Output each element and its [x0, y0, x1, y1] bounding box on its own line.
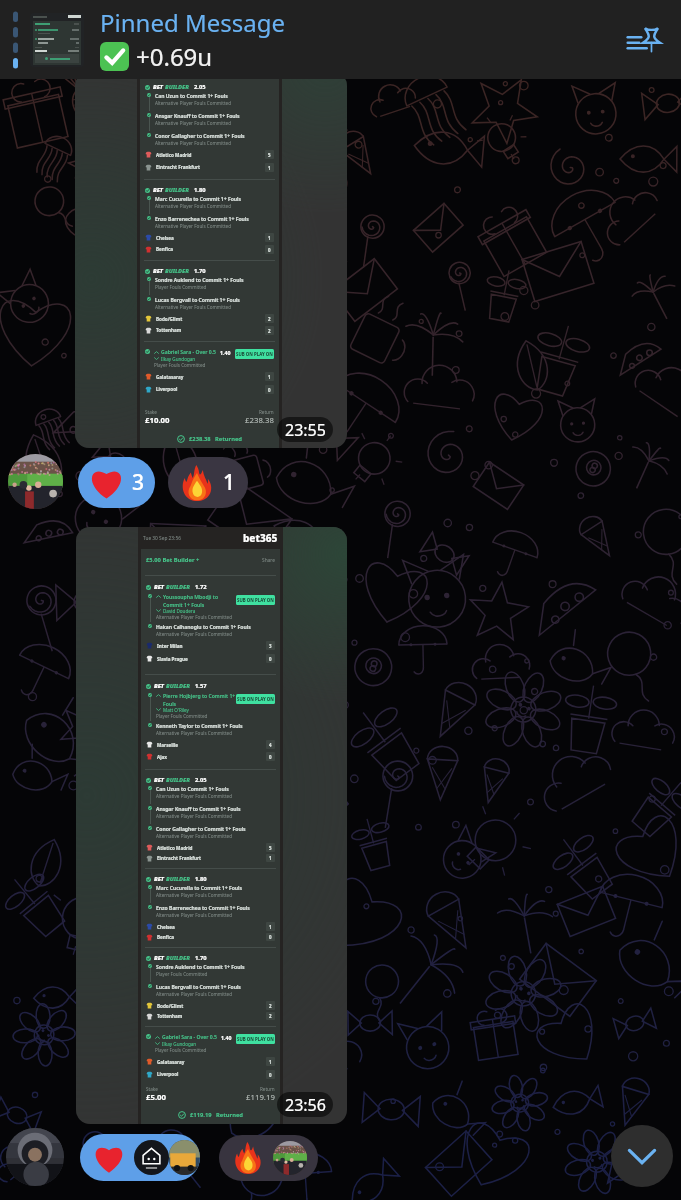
staticText: Returned: [215, 435, 243, 443]
staticText: Return: [260, 1086, 275, 1092]
staticText: £5.00 Bet Builder +: [146, 556, 200, 564]
button[interactable]: Fire reaction: [168, 457, 248, 508]
staticText: Ilkay Gundogan: [161, 356, 196, 362]
staticText: Atletico Madrid: [156, 152, 192, 158]
staticText: Alternative Player Fouls Committed: [155, 140, 231, 146]
staticText: BUILDER: [166, 776, 190, 784]
staticText: Enzo Barrenechea to Commit 1+ Fouls: [155, 216, 249, 223]
button[interactable]: Fire reaction: [219, 1135, 318, 1181]
button[interactable]: Heart reaction: [80, 1134, 200, 1181]
staticText: Bodo/Glimt: [156, 316, 183, 322]
staticText: Alternative Player Fouls Committed: [156, 730, 232, 736]
staticText: £238.38: [245, 415, 274, 426]
staticText: Stake: [145, 409, 157, 415]
staticText: 3: [269, 643, 272, 649]
staticText: Alternative Player Fouls Committed: [155, 100, 231, 106]
staticText: £119.19: [190, 1111, 212, 1119]
button[interactable]: Scroll to bottom: [611, 1125, 673, 1187]
staticText: Can Uzun to Commit 1+ Fouls: [156, 786, 229, 793]
staticText: Galatasaray: [157, 1059, 185, 1065]
staticText: Marc Cucurella to Commit 1+ Fouls: [155, 196, 242, 203]
staticText: 2.05: [194, 83, 206, 91]
staticText: Kenneth Taylor to Commit 1+ Fouls: [156, 723, 243, 730]
staticText: Sondre Auklend to Commit 1+ Fouls: [156, 964, 245, 971]
staticText: Conor Gallagher to Commit 1+ Fouls: [156, 826, 246, 833]
staticText: BET: [154, 682, 166, 690]
staticText: 0: [268, 247, 271, 253]
button[interactable]: BET: [75, 72, 347, 448]
staticText: £119.19: [246, 1092, 275, 1103]
staticText: BET: [154, 776, 166, 784]
staticText: Share: [262, 557, 275, 564]
staticText: 2: [268, 328, 271, 334]
staticText: Eintracht Frankfurt: [156, 164, 201, 170]
staticText: SUB ON PLAY ON: [236, 351, 273, 357]
staticText: Returned: [216, 1111, 244, 1119]
staticText: David Doudera: [163, 608, 196, 614]
staticText: 5: [268, 152, 271, 158]
staticText: BUILDER: [166, 682, 190, 690]
staticText: 1.80: [194, 186, 206, 194]
staticText: 1: [268, 235, 271, 241]
staticText: 2.05: [195, 776, 207, 784]
staticText: BET: [154, 875, 166, 883]
staticText: Alternative Player Fouls Committed: [156, 892, 232, 898]
staticText: Pinned Message: [100, 6, 285, 39]
staticText: Inter Milan: [157, 643, 183, 649]
staticText: Alternative Player Fouls Committed: [156, 793, 232, 799]
staticText: 3: [132, 468, 145, 497]
staticText: SUB ON PLAY ON: [237, 696, 274, 702]
staticText: 1: [223, 468, 236, 497]
staticText: Slavia Prague: [157, 656, 188, 662]
staticText: Chelsea: [157, 924, 175, 930]
staticText: 23:55: [285, 419, 326, 441]
staticText: Hakan Calhanoglu to Commit 1+ Fouls: [156, 624, 251, 631]
staticText: Bodo/Glimt: [157, 1003, 184, 1009]
staticText: BET: [153, 83, 165, 91]
staticText: £5.00: [146, 1092, 167, 1103]
staticText: 1.57: [195, 682, 207, 690]
staticText: 2: [269, 1003, 272, 1009]
staticText: 23:56: [285, 1094, 326, 1116]
staticText: 1: [268, 374, 271, 380]
staticText: BUILDER: [165, 83, 189, 91]
staticText: Sondre Auklend to Commit 1+ Fouls: [155, 277, 244, 284]
staticText: 1: [269, 924, 272, 930]
staticText: BET: [154, 583, 166, 591]
staticText: Alternative Player Fouls Committed: [155, 203, 231, 209]
staticText: 0: [269, 934, 272, 940]
staticText: Alternative Player Fouls Committed: [156, 614, 232, 620]
staticText: Stake: [146, 1086, 158, 1092]
staticText: Galatasaray: [156, 374, 184, 380]
button[interactable]: Pinned messages: [621, 17, 667, 63]
staticText: BUILDER: [166, 583, 190, 591]
staticText: Ilkay Gundogan: [162, 1041, 197, 1047]
staticText: 1: [269, 855, 272, 861]
staticText: Tottenham: [156, 327, 182, 333]
staticText: BET: [154, 954, 166, 962]
staticText: Alternative Player Fouls Committed: [155, 304, 231, 310]
staticText: 2: [268, 316, 271, 322]
button[interactable]: Tue 30 Sep 23:56: [76, 527, 347, 1124]
staticText: 0: [269, 1072, 272, 1078]
staticText: 1: [269, 1059, 272, 1065]
staticText: Benfica: [156, 246, 174, 252]
staticText: BUILDER: [165, 186, 189, 194]
staticText: £238.38: [189, 435, 211, 443]
staticText: 2: [269, 1013, 272, 1019]
staticText: 1.72: [195, 583, 207, 591]
staticText: SUB ON PLAY ON: [237, 1036, 274, 1042]
button[interactable]: Heart reaction: [78, 457, 155, 508]
staticText: Matt O'Riley: [163, 707, 189, 713]
staticText: 1.40: [221, 1034, 232, 1041]
staticText: 0: [269, 754, 272, 760]
staticText: Player Fouls Committed: [155, 284, 207, 290]
staticText: SUB ON PLAY ON: [237, 597, 274, 603]
staticText: Ansgar Knauff to Commit 1+ Fouls: [155, 113, 240, 120]
staticText: Player Fouls Committed: [154, 362, 206, 368]
staticText: BUILDER: [165, 267, 189, 275]
button[interactable]: Pinned Message: [0, 0, 681, 79]
staticText: 1.80: [195, 875, 207, 883]
staticText: Benfica: [157, 934, 175, 940]
staticText: Liverpool: [157, 1071, 179, 1077]
